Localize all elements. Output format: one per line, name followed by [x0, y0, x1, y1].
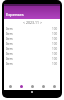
staticText: Item [6, 62, 13, 66]
button[interactable] [16, 82, 27, 90]
staticText: 100 [52, 27, 58, 31]
staticText: 100 [52, 62, 58, 66]
staticText: 100 [52, 32, 58, 36]
button[interactable] [27, 82, 38, 90]
staticText: Item [6, 52, 13, 56]
staticText: Item [6, 42, 13, 46]
staticText: Item [6, 57, 13, 61]
staticText: 100 [52, 37, 58, 41]
button[interactable] [49, 82, 60, 90]
staticText: Item [6, 37, 13, 41]
button[interactable] [4, 82, 16, 90]
staticText: 100 [52, 47, 58, 51]
staticText: Item [6, 32, 13, 36]
staticText: Item [6, 47, 13, 51]
button[interactable] [38, 82, 49, 90]
staticText: Expenses [6, 12, 24, 17]
staticText: 100 [52, 57, 58, 61]
staticText: Item [6, 27, 13, 31]
staticText: 100 [52, 42, 58, 46]
staticText: < 2023-11 > [23, 20, 42, 25]
staticText: 100 [52, 52, 58, 56]
